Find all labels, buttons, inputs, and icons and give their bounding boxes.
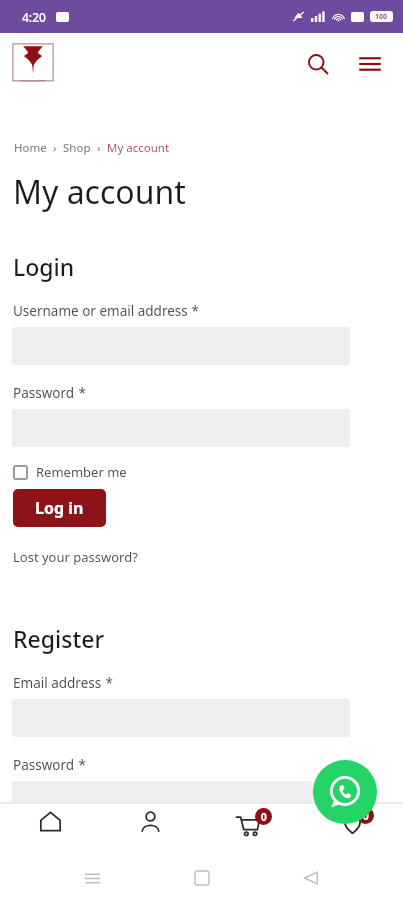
staticText: Password (13, 384, 75, 402)
button[interactable]: Shop (63, 140, 91, 156)
staticText: Log in (35, 497, 84, 519)
button[interactable]: Home (14, 140, 47, 156)
button[interactable]: Cart, 0 items (201, 803, 302, 856)
button[interactable]: Log in (13, 489, 106, 527)
staticText: › (91, 140, 107, 156)
button[interactable]: Lost your password? (13, 548, 138, 566)
button[interactable]: Chat on WhatsApp (313, 760, 377, 824)
staticText: 4:20 (22, 9, 46, 25)
staticText: 0 (363, 809, 369, 823)
button[interactable]: Home logo (12, 43, 54, 85)
staticText: Username or email address (13, 302, 188, 320)
staticText: * (102, 674, 113, 692)
button[interactable]: Search (303, 49, 333, 79)
button[interactable]: Wishlist (302, 803, 403, 856)
staticText: Email address (13, 674, 102, 692)
staticText: * (75, 384, 86, 402)
button[interactable]: Recents (74, 860, 110, 896)
button[interactable]: Account (100, 803, 201, 856)
staticText: * (75, 756, 86, 774)
staticText: Login (13, 251, 75, 282)
staticText: 100 (375, 12, 388, 22)
button[interactable] (12, 781, 350, 803)
staticText: * (188, 302, 199, 320)
button[interactable]: Remember me (13, 463, 127, 481)
button[interactable]: Menu (355, 49, 385, 79)
button[interactable]: Home (0, 803, 100, 856)
button[interactable]: Back (293, 860, 329, 896)
button[interactable]: Home (184, 860, 220, 896)
staticText: My account (13, 170, 186, 214)
staticText: Remember me (36, 463, 127, 481)
staticText: 0 (261, 810, 267, 824)
staticText: Password (13, 756, 75, 774)
staticText: Register (13, 623, 105, 654)
staticText: › (47, 140, 63, 156)
staticText: My account (107, 140, 170, 156)
